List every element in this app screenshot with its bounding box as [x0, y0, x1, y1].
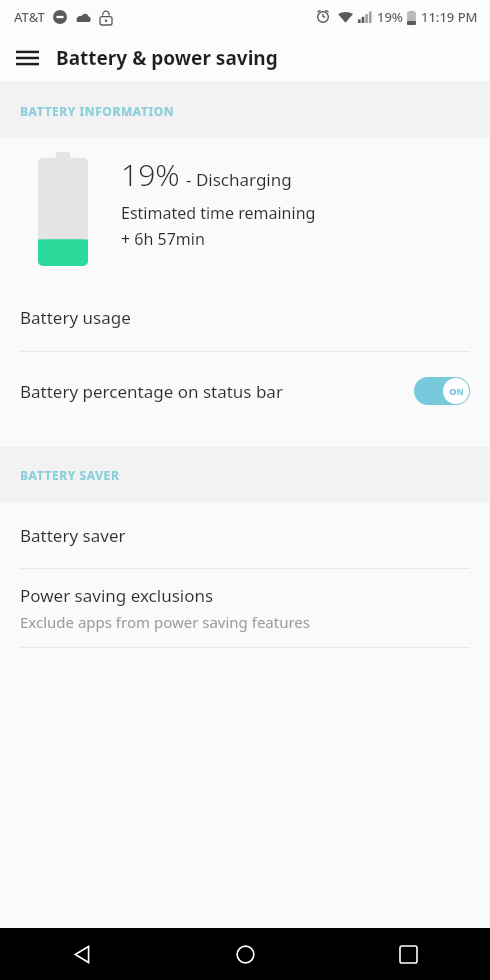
staticText: BATTERY SAVER [20, 467, 120, 483]
button[interactable]: Battery percentage on status bar [0, 352, 490, 430]
button[interactable]: Battery usage [0, 283, 490, 351]
button[interactable]: Home [164, 928, 327, 980]
staticText: Battery saver [20, 524, 126, 547]
staticText: 11:19 PM [421, 8, 478, 26]
button[interactable]: Battery saver [0, 502, 490, 568]
staticText: Battery & power saving [56, 45, 278, 71]
button[interactable]: Battery percentage toggle, on [414, 377, 470, 405]
staticText: BATTERY INFORMATION [20, 103, 175, 119]
staticText: ON [449, 385, 464, 397]
staticText: Power saving exclusions [20, 584, 214, 607]
button[interactable]: Recent apps [327, 928, 490, 980]
staticText: Battery usage [20, 306, 131, 329]
staticText: Battery percentage on status bar [20, 380, 414, 403]
button[interactable]: Power saving exclusions [0, 569, 490, 647]
staticText: Exclude apps from power saving features [20, 612, 310, 632]
staticText: - Discharging [186, 168, 292, 191]
staticText: 19% [377, 8, 403, 26]
staticText: + 6h 57min [121, 228, 205, 250]
button[interactable]: Back [0, 928, 164, 980]
staticText: Estimated time remaining [121, 202, 316, 224]
staticText: 19% [121, 154, 180, 195]
staticText: AT&T [14, 8, 45, 26]
button[interactable]: Open navigation menu [6, 37, 48, 79]
